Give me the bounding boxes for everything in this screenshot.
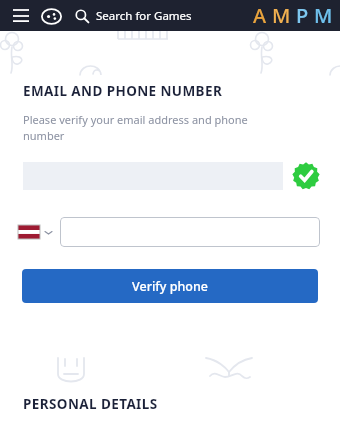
staticText: Please verify your email address and pho… (23, 112, 248, 144)
staticText: P (296, 2, 309, 29)
button[interactable]: Search (72, 6, 92, 26)
button[interactable]: Verify phone (22, 269, 318, 303)
button[interactable]: Search for Games (96, 8, 192, 24)
staticText: M (272, 2, 291, 29)
button[interactable]: Email verified (292, 162, 320, 190)
button[interactable]: AMPM home (253, 2, 333, 29)
staticText: PERSONAL DETAILS (23, 395, 158, 413)
button[interactable]: Select country code (18, 221, 52, 243)
staticText: EMAIL AND PHONE NUMBER (23, 82, 223, 100)
staticText: Search for Games (96, 8, 192, 24)
button[interactable]: Games (39, 4, 63, 28)
staticText: Verify phone (132, 278, 208, 295)
button[interactable]: Phone number (60, 217, 320, 247)
staticText: A (253, 2, 267, 29)
staticText: M (314, 2, 333, 29)
button[interactable]: Menu (8, 3, 34, 29)
